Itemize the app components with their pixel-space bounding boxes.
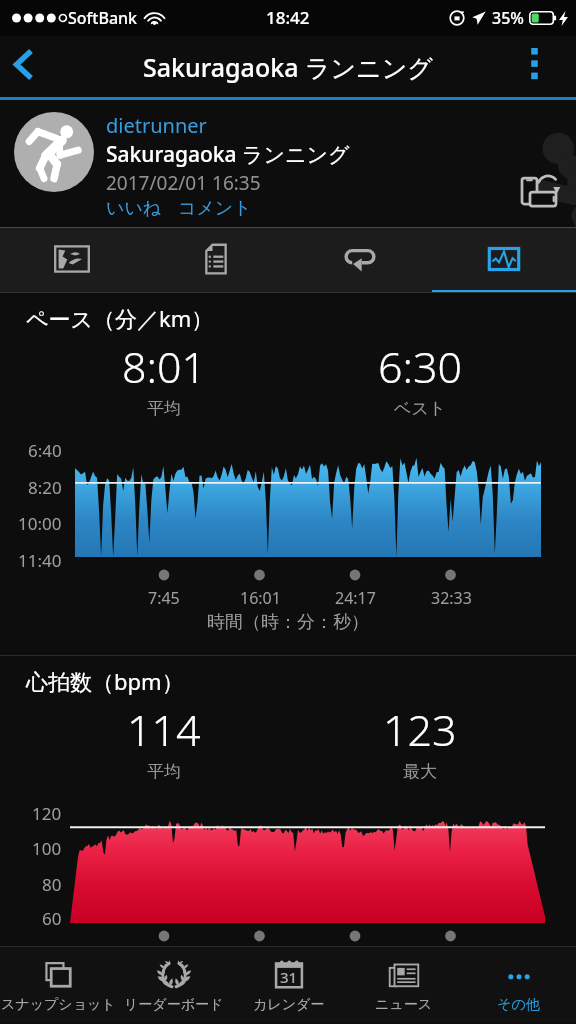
button[interactable]: リーダーボード (116, 947, 231, 1023)
staticText: 8:01 (122, 337, 207, 396)
staticText: 最大 (403, 761, 437, 782)
staticText: 120 (32, 802, 62, 825)
staticText: 18:42 (266, 6, 310, 29)
staticText: 6:30 (378, 337, 463, 396)
staticText: その他 (497, 996, 540, 1014)
staticText: 31 (280, 967, 298, 987)
staticText: 7:45 (148, 587, 180, 609)
staticText: 35% (492, 7, 524, 29)
button[interactable]: Rotate screen (512, 160, 568, 216)
staticText: リーダーボード (124, 996, 224, 1014)
staticText: 心拍数（bpm） (26, 666, 184, 696)
staticText: 16:01 (240, 587, 281, 609)
button[interactable]: その他 (461, 947, 576, 1023)
button[interactable]: Laps (288, 228, 432, 293)
button[interactable]: ニュース (346, 947, 461, 1023)
button[interactable]: スナップショット (0, 947, 116, 1023)
staticText: 平均 (147, 761, 181, 782)
staticText: SoftBank (68, 7, 138, 29)
staticText: dietrunner (106, 112, 207, 139)
staticText: カレンダー (253, 996, 325, 1014)
button[interactable]: コメント (178, 197, 252, 220)
button[interactable]: Splits (144, 228, 288, 293)
staticText: ペース（分／km） (26, 303, 214, 333)
button[interactable]: いいね (106, 197, 162, 220)
button[interactable]: Charts (432, 228, 576, 293)
staticText: 時間（時：分：秒） (207, 611, 369, 634)
button[interactable]: More options (506, 35, 562, 91)
staticText: 10:00 (18, 512, 62, 535)
staticText: スナップショット (1, 996, 116, 1014)
staticText: 6:40 (28, 439, 62, 462)
staticText: 114 (127, 700, 201, 759)
staticText: 123 (383, 700, 457, 759)
staticText: ニュース (375, 996, 432, 1014)
staticText: 80 (42, 873, 62, 896)
staticText: 11:40 (18, 549, 62, 572)
staticText: Sakuragaoka ランニング (106, 140, 350, 169)
staticText: 100 (32, 837, 62, 860)
staticText: 8:20 (28, 476, 62, 499)
staticText: 平均 (147, 398, 181, 419)
button[interactable]: Back (0, 36, 51, 92)
button[interactable]: 31 (231, 947, 346, 1023)
staticText: 2017/02/01 16:35 (106, 170, 261, 196)
staticText: ベスト (394, 398, 447, 419)
staticText: 24:17 (335, 587, 376, 609)
staticText: 32:33 (431, 587, 472, 609)
button[interactable]: Map (0, 228, 144, 293)
staticText: Sakuragaoka ランニング (143, 50, 433, 84)
staticText: 60 (42, 907, 62, 930)
